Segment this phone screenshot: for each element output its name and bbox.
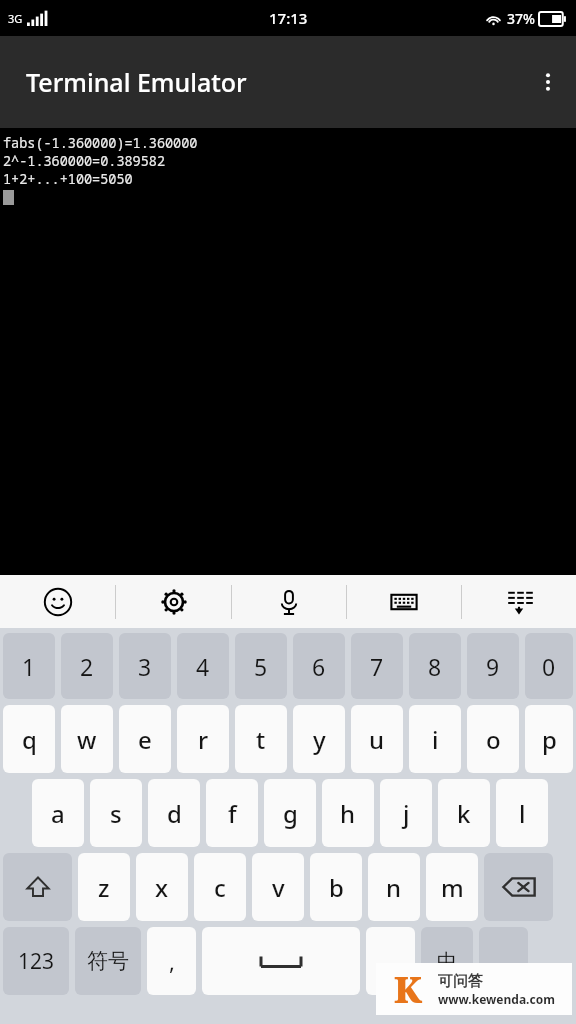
button[interactable]: u [351, 705, 403, 773]
staticText: 37% [507, 9, 535, 28]
button[interactable]: 中 [421, 927, 473, 995]
button[interactable]: z [78, 853, 130, 921]
staticText: 2^-1.360000=0.389582 [3, 152, 165, 170]
staticText: z [98, 871, 110, 904]
button[interactable]: 符号 [75, 927, 141, 995]
staticText: 4 [196, 651, 210, 682]
button[interactable]: f [206, 779, 258, 847]
staticText: , [169, 946, 175, 976]
button[interactable]: 2 [61, 633, 113, 699]
button[interactable]: 5 [235, 633, 287, 699]
button[interactable]: j [380, 779, 432, 847]
button[interactable]: d [148, 779, 200, 847]
button[interactable]: k [438, 779, 490, 847]
button[interactable]: g [264, 779, 316, 847]
staticText: a [51, 797, 65, 830]
button[interactable]: 9 [467, 633, 519, 699]
staticText: i [432, 723, 439, 756]
staticText: 5 [254, 651, 268, 682]
staticText: g [283, 797, 298, 830]
button[interactable]: y [293, 705, 345, 773]
staticText: 可问答 [438, 972, 483, 991]
button[interactable]: o [467, 705, 519, 773]
staticText: r [198, 723, 209, 756]
button[interactable]: 6 [293, 633, 345, 699]
button[interactable]: Voice input [232, 575, 346, 628]
staticText: 9 [486, 651, 500, 682]
staticText: f [228, 797, 237, 830]
staticText: 6 [312, 651, 326, 682]
button[interactable]: , [147, 927, 196, 995]
other: Backspace [502, 875, 536, 899]
staticText: d [167, 797, 182, 830]
button[interactable]: Switch keyboard [347, 575, 461, 628]
staticText: n [386, 871, 402, 904]
button[interactable]: i [409, 705, 461, 773]
staticText: x [155, 871, 169, 904]
button[interactable]: w [61, 705, 113, 773]
staticText: www.kewenda.com [438, 991, 555, 1007]
button[interactable]: 0 [525, 633, 573, 699]
button[interactable]: c [194, 853, 246, 921]
staticText: fabs(-1.360000)=1.360000 [3, 134, 198, 152]
staticText: b [329, 871, 344, 904]
button[interactable]: 3 [119, 633, 171, 699]
button[interactable]: 8 [409, 633, 461, 699]
staticText: y [313, 723, 326, 756]
button[interactable]: s [90, 779, 142, 847]
button[interactable]: Hide keyboard [462, 575, 576, 628]
button[interactable]: n [368, 853, 420, 921]
staticText: 3G [8, 11, 23, 26]
button[interactable] [479, 927, 528, 995]
button[interactable]: Settings [116, 575, 231, 628]
button[interactable]: b [310, 853, 362, 921]
staticText: k [457, 797, 471, 830]
button[interactable]: x [136, 853, 188, 921]
staticText: 123 [18, 947, 55, 976]
staticText: l [519, 797, 526, 830]
button[interactable]: h [322, 779, 374, 847]
button[interactable]: 7 [351, 633, 403, 699]
staticText: 中 [437, 949, 457, 974]
staticText: p [542, 723, 557, 756]
staticText: w [77, 723, 97, 756]
button[interactable]: 123 [3, 927, 69, 995]
button[interactable]: e [119, 705, 171, 773]
button[interactable]: a [32, 779, 84, 847]
button[interactable]: p [525, 705, 573, 773]
staticText: q [22, 723, 37, 756]
staticText: c [214, 871, 226, 904]
staticText: o [486, 723, 501, 756]
button[interactable] [202, 927, 360, 995]
button[interactable]: v [252, 853, 304, 921]
staticText: e [138, 723, 152, 756]
staticText: t [256, 723, 266, 756]
button[interactable]: Backspace [484, 853, 553, 921]
button[interactable]: Shift [3, 853, 72, 921]
button[interactable]: More options [520, 54, 576, 110]
staticText: Terminal Emulator [26, 65, 247, 99]
staticText: K [394, 965, 423, 1014]
button[interactable] [366, 927, 415, 995]
button[interactable]: t [235, 705, 287, 773]
staticText: 2 [80, 651, 94, 682]
staticText: v [272, 871, 285, 904]
button[interactable]: l [496, 779, 548, 847]
button[interactable]: q [3, 705, 55, 773]
staticText: m [441, 871, 464, 904]
staticText: h [340, 797, 356, 830]
button[interactable]: Emoji [0, 575, 115, 628]
staticText: u [369, 723, 385, 756]
button[interactable]: 1 [3, 633, 55, 699]
button[interactable]: r [177, 705, 229, 773]
staticText: 8 [428, 651, 442, 682]
staticText: 1 [22, 651, 36, 682]
button[interactable]: m [426, 853, 478, 921]
staticText: 7 [370, 651, 384, 682]
button[interactable]: 4 [177, 633, 229, 699]
other: Shift [24, 873, 52, 901]
staticText: 3 [138, 651, 152, 682]
staticText: 1+2+...+100=5050 [3, 170, 133, 188]
staticText: 符号 [87, 948, 129, 974]
staticText: 0 [542, 651, 556, 682]
